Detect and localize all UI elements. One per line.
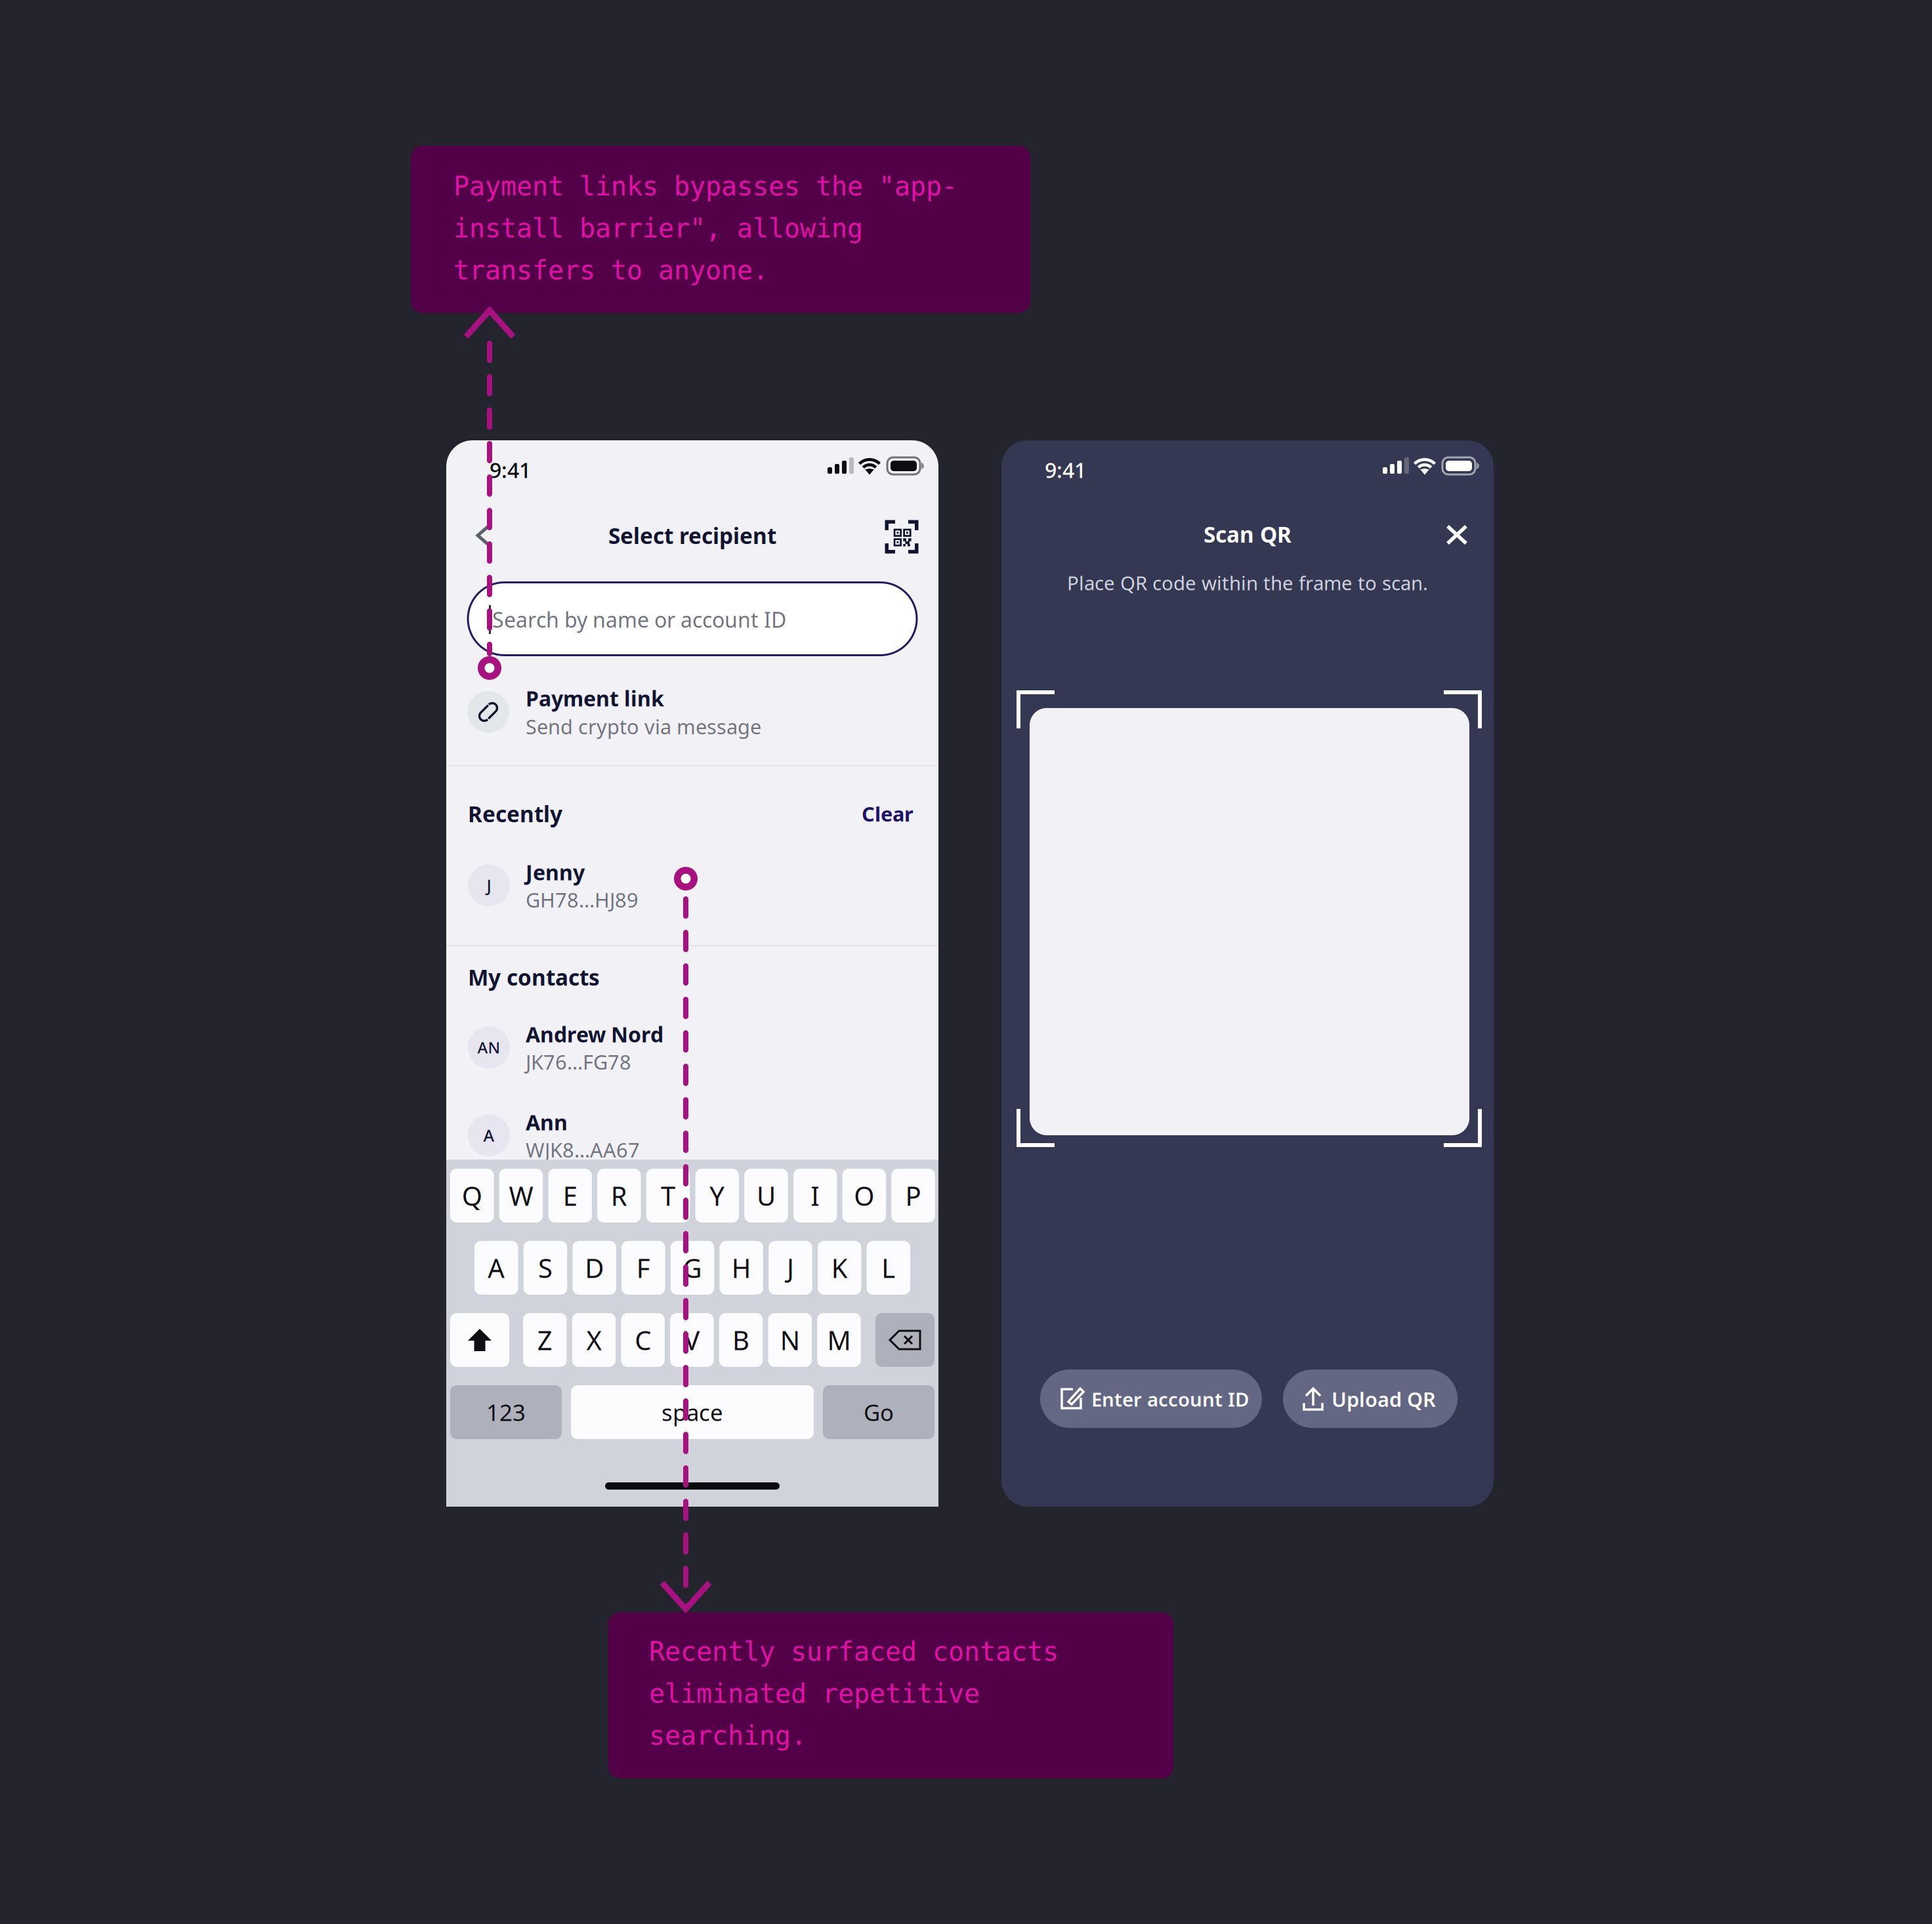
staticText: V [684,1323,700,1357]
staticText: A [488,1250,505,1285]
staticText: My contacts [468,963,600,992]
staticText: X [586,1323,601,1357]
staticText: Recently surfaced contacts [649,1637,1059,1667]
button[interactable]: Delete [875,1313,934,1367]
button[interactable]: Upload QR [1283,1370,1458,1428]
button[interactable]: G [671,1241,714,1295]
staticText: F [636,1250,650,1285]
staticText: R [611,1178,627,1213]
button[interactable]: Payment link [446,671,938,753]
staticText: Z [537,1323,552,1357]
button[interactable]: T [646,1169,690,1223]
staticText: Q [462,1178,482,1213]
staticText: Select recipient [608,521,776,550]
staticText: WJK8...AA67 [526,1136,640,1163]
staticText: Scan QR [1204,520,1291,549]
staticText: Clear [862,800,913,827]
staticText: Ann [526,1108,568,1136]
staticText: L [882,1250,895,1285]
button[interactable]: U [744,1169,788,1223]
staticText: M [827,1323,851,1357]
button[interactable]: K [818,1241,861,1295]
button[interactable]: J [446,847,938,924]
staticText: C [635,1323,651,1357]
button[interactable]: C [621,1313,665,1367]
staticText: Upload QR [1332,1386,1436,1412]
button[interactable]: Scan QR code [881,516,923,558]
button[interactable]: Z [523,1313,567,1367]
staticText: Enter account ID [1091,1386,1249,1412]
button[interactable]: S [523,1241,567,1295]
staticText: Payment links bypasses the "app- [453,171,957,201]
button[interactable]: Clear [782,795,913,832]
button[interactable]: L [867,1241,910,1295]
staticText: K [831,1250,848,1285]
staticText: Y [710,1178,725,1213]
staticText: install barrier", allowing [453,213,863,243]
staticText: Payment link [526,684,664,712]
staticText: JK76...FG78 [526,1048,631,1075]
button[interactable]: O [842,1169,886,1223]
staticText: Place QR code within the frame to scan. [1067,570,1428,596]
staticText: searching. [649,1721,807,1751]
button[interactable]: D [573,1241,616,1295]
staticText: AN [477,1037,500,1058]
button[interactable]: F [622,1241,665,1295]
staticText: Go [864,1397,894,1427]
button[interactable]: Y [695,1169,739,1223]
staticText: J [487,874,491,896]
button[interactable]: Back [455,511,505,560]
button[interactable]: I [793,1169,837,1223]
staticText: Recently [468,799,562,828]
staticText: W [509,1178,533,1213]
staticText: N [780,1323,800,1357]
button[interactable]: W [499,1169,543,1223]
button[interactable]: Q [450,1169,494,1223]
button[interactable]: H [720,1241,763,1295]
button[interactable]: N [768,1313,812,1367]
staticText: J [787,1250,794,1285]
staticText: P [905,1178,921,1213]
button[interactable]: V [670,1313,714,1367]
button[interactable]: A [474,1241,518,1295]
button[interactable]: X [572,1313,616,1367]
button[interactable]: Shift [450,1313,509,1367]
button[interactable]: M [817,1313,861,1367]
staticText: Send crypto via message [526,713,761,740]
button[interactable]: Go [823,1385,934,1439]
staticText: Andrew Nord [526,1020,663,1048]
staticText: GH78...HJ89 [526,886,639,913]
button[interactable]: J [769,1241,812,1295]
button[interactable]: A [446,1097,938,1174]
button[interactable]: P [891,1169,935,1223]
button[interactable]: E [548,1169,592,1223]
staticText: H [732,1250,751,1285]
staticText: U [757,1178,776,1213]
staticText: space [661,1397,723,1427]
button[interactable]: Enter account ID [1040,1370,1262,1428]
button[interactable]: R [597,1169,641,1223]
staticText: 9:41 [1045,456,1086,484]
staticText: transfers to anyone. [453,255,768,285]
staticText: D [585,1250,604,1285]
staticText: T [661,1178,675,1213]
staticText: G [683,1250,702,1285]
staticText: I [811,1178,820,1213]
staticText: O [854,1178,874,1213]
staticText: B [732,1323,749,1357]
button[interactable]: space [571,1385,814,1439]
staticText: Search by name or account ID [492,606,786,633]
staticText: 9:41 [490,456,531,484]
staticText: A [483,1124,494,1146]
staticText: eliminated repetitive [649,1679,980,1709]
staticText: E [563,1178,577,1213]
staticText: Jenny [526,858,585,886]
button[interactable]: 123 [450,1385,562,1439]
staticText: S [538,1250,553,1285]
button[interactable]: B [719,1313,763,1367]
button[interactable]: Close [1436,514,1478,556]
button[interactable]: AN [446,1009,938,1086]
staticText: 123 [486,1397,526,1427]
